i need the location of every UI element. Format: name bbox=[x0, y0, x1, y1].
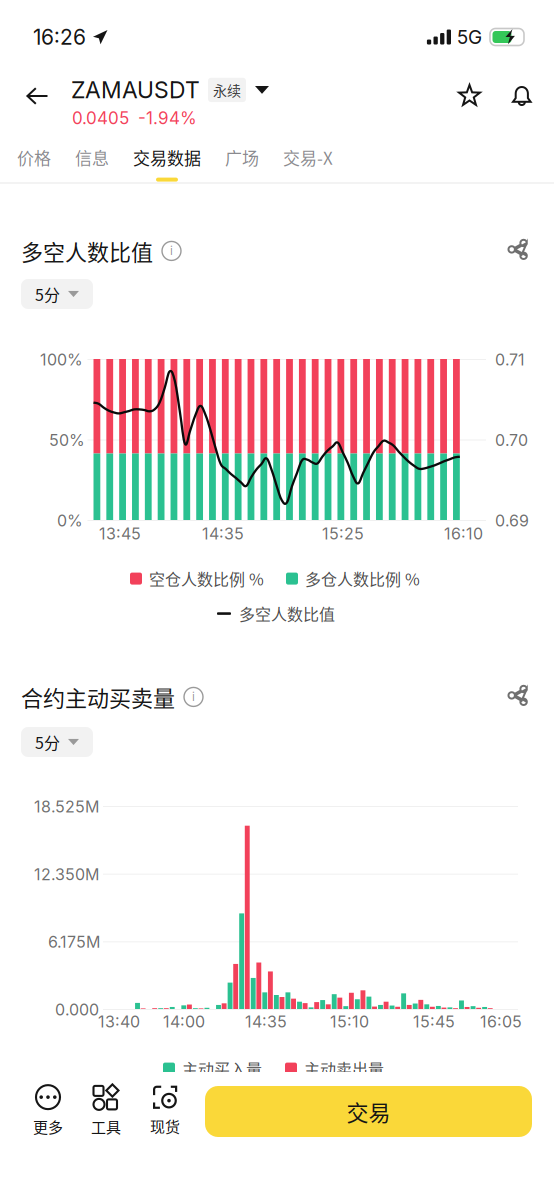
button[interactable]: Share bbox=[507, 239, 529, 261]
staticText: 5G bbox=[457, 25, 482, 48]
staticText: 14:35 bbox=[202, 524, 244, 543]
staticText: 信息 bbox=[75, 145, 109, 170]
staticText: 14:00 bbox=[163, 1012, 205, 1031]
staticText: 5分 bbox=[35, 282, 60, 306]
staticText: 多空人数比值 bbox=[239, 602, 335, 625]
button[interactable]: 现货 bbox=[137, 1086, 193, 1136]
staticText: -1.94% bbox=[138, 108, 197, 128]
button[interactable]: Alerts bbox=[509, 83, 535, 109]
staticText: 16:26 bbox=[33, 24, 86, 50]
staticText: 现货 bbox=[150, 1115, 180, 1137]
staticText: 12.350M bbox=[34, 865, 99, 884]
staticText: 多空人数比值 bbox=[21, 235, 153, 267]
staticText: 合约主动买卖量 bbox=[21, 681, 175, 713]
staticText: 13:45 bbox=[99, 524, 141, 543]
button[interactable]: 5分 bbox=[21, 279, 93, 309]
staticText: 价格 bbox=[17, 145, 51, 170]
staticText: 交易数据 bbox=[133, 145, 201, 170]
staticText: 0.70 bbox=[495, 430, 528, 450]
button[interactable]: 工具 bbox=[78, 1086, 134, 1136]
staticText: 13:40 bbox=[98, 1012, 140, 1031]
staticText: 15:25 bbox=[322, 524, 364, 543]
button[interactable]: 广场 bbox=[213, 145, 271, 182]
staticText: i bbox=[192, 690, 195, 704]
button[interactable]: 交易 bbox=[205, 1086, 532, 1137]
button[interactable]: Back bbox=[25, 86, 49, 106]
staticText: 0.000 bbox=[55, 1000, 99, 1019]
staticText: 空仓人数比例 % bbox=[149, 567, 264, 590]
button[interactable]: Share bbox=[507, 685, 529, 707]
staticText: 交易 bbox=[346, 1096, 390, 1127]
staticText: 0.71 bbox=[495, 350, 525, 369]
staticText: 0.69 bbox=[495, 511, 529, 530]
staticText: 主动卖出量 bbox=[304, 1057, 384, 1080]
staticText: 6.175M bbox=[48, 932, 100, 952]
button[interactable]: 交易-X bbox=[271, 145, 345, 182]
staticText: 永续 bbox=[213, 80, 241, 100]
button[interactable]: 5分 bbox=[21, 727, 93, 757]
staticText: 0% bbox=[57, 511, 83, 530]
staticText: 5分 bbox=[35, 730, 60, 754]
button[interactable]: 交易数据 bbox=[121, 145, 213, 182]
staticText: 15:10 bbox=[330, 1012, 369, 1031]
staticText: 交易-X bbox=[283, 145, 333, 170]
staticText: 16:10 bbox=[444, 524, 483, 543]
staticText: 广场 bbox=[225, 145, 259, 170]
button[interactable]: 更多 bbox=[20, 1086, 76, 1136]
staticText: 18.525M bbox=[34, 797, 99, 816]
staticText: 100% bbox=[40, 350, 83, 369]
staticText: 更多 bbox=[33, 1116, 63, 1137]
staticText: 16:05 bbox=[480, 1012, 522, 1031]
staticText: 主动买入量 bbox=[182, 1057, 262, 1080]
staticText: 50% bbox=[49, 430, 85, 450]
button[interactable]: 信息 bbox=[63, 145, 121, 182]
staticText: ZAMAUSDT bbox=[71, 76, 200, 104]
staticText: i bbox=[170, 244, 173, 258]
staticText: 工具 bbox=[91, 1116, 121, 1137]
button[interactable]: 价格 bbox=[5, 145, 63, 182]
staticText: 15:45 bbox=[413, 1012, 455, 1031]
staticText: 多仓人数比例 % bbox=[305, 567, 420, 590]
button[interactable]: Add to favourites bbox=[457, 83, 483, 109]
staticText: 14:35 bbox=[245, 1012, 287, 1031]
staticText: 0.0405 bbox=[72, 108, 129, 128]
